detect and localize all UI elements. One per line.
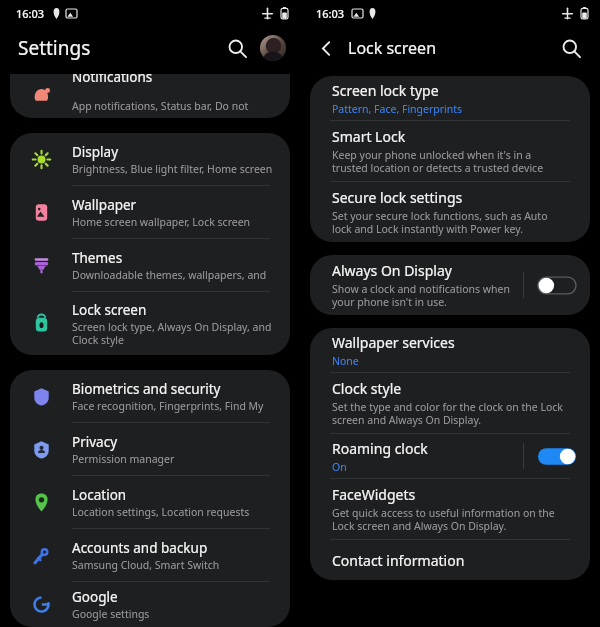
staticText: Themes <box>72 249 123 267</box>
button[interactable]: Roaming clock <box>310 434 590 478</box>
staticText: Face recognition, Fingerprints, Find My … <box>72 399 278 413</box>
staticText: Screen lock type, Always On Display, and… <box>72 320 278 347</box>
staticText: On <box>332 460 347 474</box>
staticText: Pattern, Face, Fingerprints <box>332 102 463 116</box>
staticText: Set your secure lock functions, such as … <box>332 209 568 236</box>
button[interactable]: Smart Lock <box>310 121 590 181</box>
staticText: App notifications, Status bar, Do not di… <box>72 99 278 113</box>
staticText: Display <box>72 143 119 161</box>
button[interactable]: Always On Display <box>310 255 590 315</box>
staticText: Wallpaper <box>72 196 137 214</box>
staticText: Lock screen <box>348 37 437 59</box>
button[interactable]: Google <box>10 582 290 627</box>
button[interactable]: Toggle on <box>538 447 576 466</box>
staticText: Lock screen <box>72 301 147 319</box>
staticText: Screen lock type <box>332 81 439 100</box>
staticText: Contact information <box>332 551 465 570</box>
staticText: Keep your phone unlocked when it's in a … <box>332 148 568 175</box>
staticText: Privacy <box>72 433 118 451</box>
button[interactable]: FaceWidgets <box>310 479 590 539</box>
button[interactable]: Display <box>10 133 290 185</box>
staticText: Brightness, Blue light filter, Home scre… <box>72 162 273 176</box>
button[interactable]: Secure lock settings <box>310 182 590 242</box>
staticText: Set the type and color for the clock on … <box>332 400 568 427</box>
staticText: Google settings <box>72 607 150 621</box>
staticText: Biometrics and security <box>72 380 221 398</box>
button[interactable]: Search <box>222 33 252 63</box>
staticText: Roaming clock <box>332 439 428 458</box>
button[interactable]: Contact information <box>310 540 590 580</box>
staticText: Accounts and backup <box>72 539 208 557</box>
button[interactable]: Notifications <box>10 74 290 118</box>
button[interactable]: Toggle off <box>538 276 576 295</box>
staticText: Permission manager <box>72 452 175 466</box>
staticText: Settings <box>18 35 91 61</box>
staticText: Wallpaper services <box>332 333 455 352</box>
staticText: Downloadable themes, wallpapers, and ico… <box>72 268 278 282</box>
staticText: None <box>332 354 359 368</box>
button[interactable]: Lock screen <box>10 292 290 355</box>
button[interactable]: Screen lock type <box>310 76 590 120</box>
button[interactable]: Privacy <box>10 423 290 475</box>
staticText: Smart Lock <box>332 127 406 146</box>
staticText: 16:03 <box>16 6 45 21</box>
button[interactable]: Clock style <box>310 373 590 433</box>
button[interactable]: Wallpaper services <box>310 328 590 372</box>
staticText: Always On Display <box>332 261 452 280</box>
button[interactable]: Wallpaper <box>10 186 290 238</box>
staticText: 16:03 <box>316 6 345 21</box>
button[interactable]: Location <box>10 476 290 528</box>
button[interactable]: Back <box>310 32 342 64</box>
staticText: Clock style <box>332 379 402 398</box>
staticText: Get quick access to useful information o… <box>332 506 568 533</box>
staticText: Show a clock and notifications when your… <box>332 282 515 309</box>
staticText: Notifications <box>72 74 153 86</box>
staticText: FaceWidgets <box>332 485 416 504</box>
button[interactable]: Biometrics and security <box>10 370 290 422</box>
button[interactable]: Search <box>556 33 586 63</box>
staticText: Location <box>72 486 127 504</box>
button[interactable]: Profile <box>260 35 286 61</box>
staticText: Location settings, Location requests <box>72 505 250 519</box>
button[interactable]: Accounts and backup <box>10 529 290 581</box>
staticText: Google <box>72 588 118 606</box>
staticText: Samsung Cloud, Smart Switch <box>72 558 220 572</box>
button[interactable]: Themes <box>10 239 290 291</box>
staticText: Home screen wallpaper, Lock screen wallp… <box>72 215 278 229</box>
staticText: Secure lock settings <box>332 188 463 207</box>
